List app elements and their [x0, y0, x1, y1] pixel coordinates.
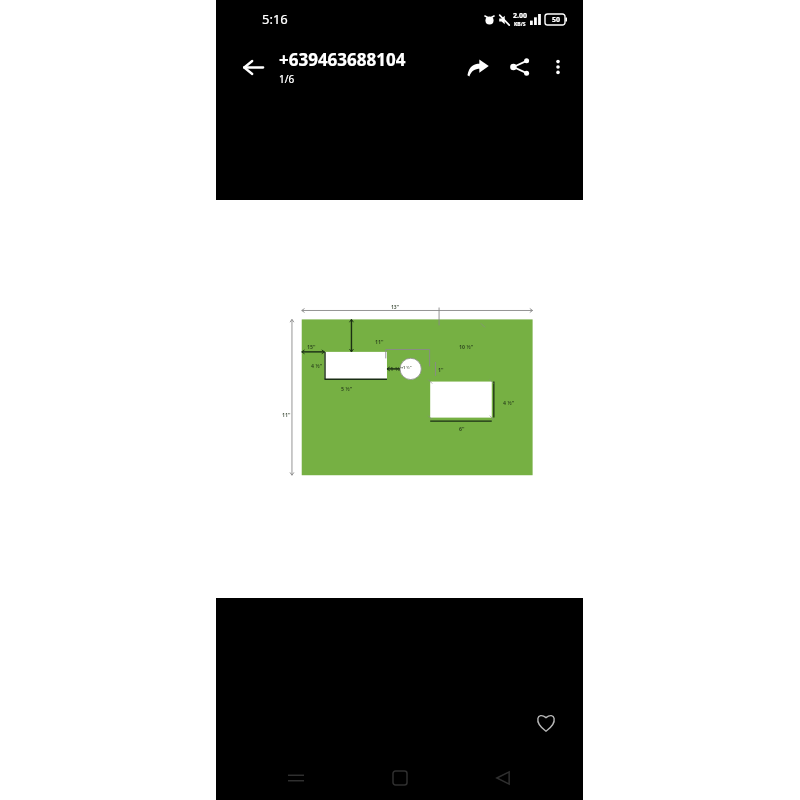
staticText: 4 ½" — [311, 362, 323, 369]
staticText: 1" — [438, 366, 444, 373]
button[interactable]: Back — [234, 48, 272, 86]
button[interactable]: Recent apps — [272, 755, 320, 800]
staticText: 10 ½" — [459, 343, 474, 350]
button[interactable]: Favorite — [525, 701, 567, 743]
staticText: +639463688104 — [279, 48, 406, 71]
button[interactable]: Share — [499, 46, 541, 88]
staticText: 5 ½" — [341, 385, 353, 392]
staticText: 1/6 — [279, 72, 295, 86]
staticText: 2.00 — [513, 11, 527, 21]
button[interactable]: Forward — [457, 46, 499, 88]
staticText: 50 — [552, 15, 561, 25]
staticText: 4 ½" — [503, 399, 515, 406]
button[interactable]: 13" — [216, 200, 583, 598]
staticText: 13" — [391, 304, 400, 311]
staticText: KB/S — [514, 21, 526, 28]
staticText: 11" — [375, 338, 384, 345]
staticText: 1 ½" — [390, 365, 404, 373]
staticText: 15" — [307, 343, 316, 350]
staticText: 11" — [282, 411, 291, 418]
staticText: 1 ½" — [403, 365, 412, 370]
button[interactable]: Home — [376, 755, 424, 800]
button[interactable]: More options — [541, 50, 575, 84]
button[interactable]: Back — [479, 755, 527, 800]
staticText: 6" — [459, 425, 465, 432]
staticText: 5:16 — [262, 10, 288, 28]
